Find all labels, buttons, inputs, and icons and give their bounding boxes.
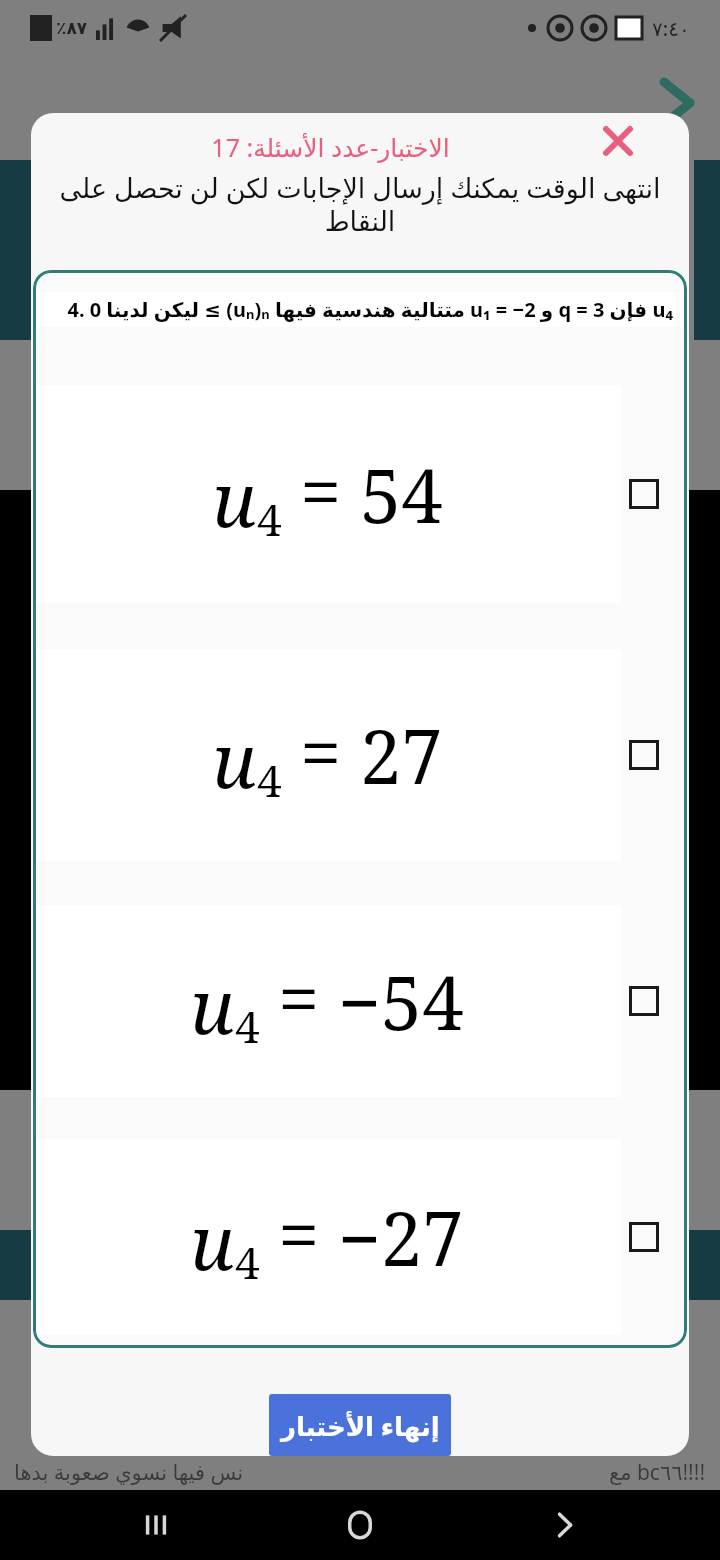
button[interactable]: إنهاء الأختبار — [269, 1394, 451, 1456]
staticText: u — [190, 1191, 235, 1292]
staticText: ٪٨٧ — [56, 18, 88, 38]
staticText: 54 — [360, 444, 443, 545]
button[interactable]: u — [33, 1139, 687, 1335]
staticText: = — [278, 1183, 320, 1284]
staticText: u — [212, 448, 257, 549]
staticText: 4. ليكن لدينا 0 ≤ (uₙ)ₙ متتالية هندسية ف… — [47, 296, 673, 323]
staticText: إنهاء الأختبار — [281, 1408, 440, 1443]
staticText: الاختبار-عدد الأسئلة: 17 — [211, 130, 450, 164]
staticText: u — [212, 709, 257, 810]
staticText: u — [190, 955, 235, 1056]
button[interactable]: u — [33, 905, 687, 1097]
button[interactable]: Select answer — [629, 479, 659, 509]
staticText: 4 — [257, 489, 282, 549]
staticText: 4 — [257, 750, 282, 810]
staticText: −54 — [338, 951, 464, 1052]
button[interactable]: u — [33, 385, 687, 603]
button[interactable]: Close — [595, 118, 641, 164]
button[interactable]: u — [33, 649, 687, 861]
staticText: = — [300, 440, 342, 541]
staticText: = — [300, 701, 342, 802]
staticText: انتهى الوقت يمكنك إرسال الإجابات لكن لن … — [37, 169, 683, 237]
button[interactable]: Recent apps — [108, 1490, 204, 1560]
staticText: نس فيها نسوي صعوبة بدها — [14, 1458, 244, 1487]
button[interactable]: Home — [312, 1490, 408, 1560]
button[interactable]: Select answer — [629, 1222, 659, 1252]
staticText: −27 — [338, 1187, 464, 1288]
staticText: 4 — [235, 996, 260, 1056]
staticText: مع bc٦٦!!!! — [609, 1458, 706, 1487]
staticText: ٧:٤٠ — [652, 15, 690, 42]
staticText: 27 — [360, 705, 443, 806]
staticText: = — [278, 947, 320, 1048]
staticText: 4 — [235, 1232, 260, 1292]
button[interactable]: Select answer — [629, 740, 659, 770]
button[interactable]: Back — [516, 1490, 612, 1560]
button[interactable]: Select answer — [629, 986, 659, 1016]
